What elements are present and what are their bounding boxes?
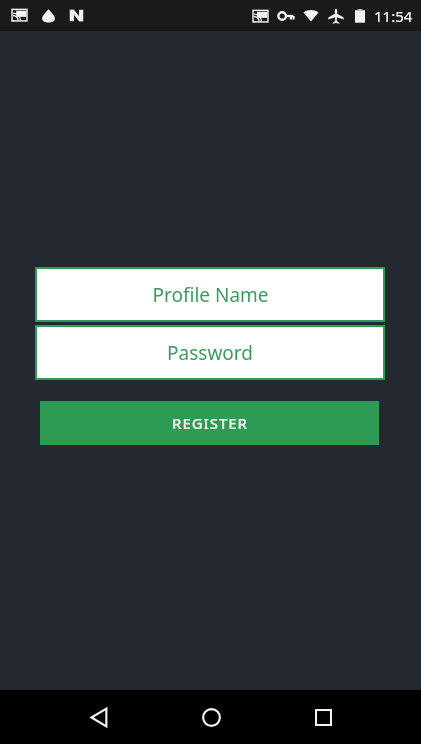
button[interactable]: Password [37,327,383,378]
staticText: REGISTER [172,413,248,433]
button[interactable]: REGISTER [40,401,379,445]
staticText: Password [167,340,253,366]
button[interactable]: Recent apps [299,693,347,741]
button[interactable]: Profile Name [37,269,383,320]
staticText: Profile Name [152,282,269,308]
button[interactable]: Home [187,693,235,741]
staticText: 11:54 [374,6,413,26]
button[interactable]: Back [75,693,123,741]
